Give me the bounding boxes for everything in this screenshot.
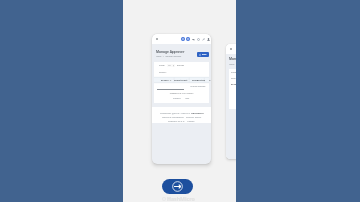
staticText: Department <box>174 79 188 82</box>
staticText: Showing 0 to 0 of 0 entries <box>154 92 209 95</box>
button[interactable]: Notification <box>181 37 185 41</box>
staticText: Show <box>231 71 236 74</box>
button[interactable]: Action <box>197 38 200 41</box>
staticText: Designation <box>192 79 206 82</box>
button[interactable]: Action <box>192 38 195 41</box>
staticText: Terms & conditions Privacy Policy <box>162 115 202 118</box>
staticText: HashMicro <box>167 195 195 202</box>
staticText: Mana <box>229 57 236 61</box>
staticText: Back <box>202 53 207 56</box>
button[interactable]: 10 <box>167 64 175 67</box>
staticText: 10 <box>168 64 171 67</box>
staticText: Show <box>159 64 165 67</box>
staticText: Copyright @2018 - 2024 PT <box>160 111 191 114</box>
staticText: Branc <box>231 83 236 86</box>
button[interactable]: Notification <box>186 37 190 41</box>
staticText: entries <box>177 64 185 67</box>
staticText: No data available <box>190 85 206 88</box>
button[interactable]: Next <box>185 97 190 100</box>
staticText: Sear <box>231 77 236 80</box>
button[interactable]: Previous <box>173 97 181 100</box>
staticText: Home <box>229 63 235 66</box>
staticText: Hashmicro <box>191 111 204 114</box>
button[interactable]: Back <box>197 52 209 57</box>
button[interactable]: Menu <box>155 37 159 41</box>
staticText: Support v7.0.6 Status <box>168 119 195 122</box>
staticText: Home > Manage Approver <box>156 55 182 58</box>
button[interactable]: Profile <box>207 38 210 41</box>
button[interactable]: Action <box>202 38 205 41</box>
staticText: Branch <box>161 79 169 82</box>
button[interactable]: Next slide <box>162 179 193 194</box>
staticText: Search: <box>159 71 167 74</box>
staticText: Manage Approver <box>156 50 185 54</box>
